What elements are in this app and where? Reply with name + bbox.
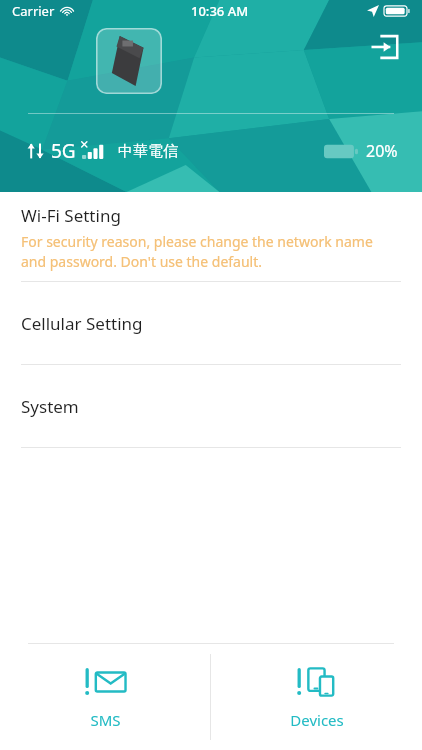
staticText: System [21, 395, 79, 418]
button[interactable]: System [0, 365, 422, 447]
button[interactable]: Devices [211, 644, 422, 750]
staticText: SMS [90, 710, 121, 730]
button[interactable]: Wi-Fi Setting [0, 192, 422, 281]
staticText: Cellular Setting [21, 312, 143, 335]
staticText: For security reason, please change the n… [21, 232, 401, 271]
button[interactable]: SMS [0, 644, 210, 750]
staticText: Wi-Fi Setting [21, 204, 121, 227]
staticText: 10:36 AM [191, 2, 249, 20]
staticText: Devices [290, 710, 344, 730]
button[interactable]: Log out [368, 30, 402, 64]
staticText: 20% [366, 140, 398, 162]
button[interactable]: Device [96, 28, 162, 94]
staticText: 中華電信 [118, 142, 178, 161]
staticText: 5G [51, 138, 76, 164]
staticText: Carrier [12, 2, 55, 20]
button[interactable]: Cellular Setting [0, 282, 422, 364]
